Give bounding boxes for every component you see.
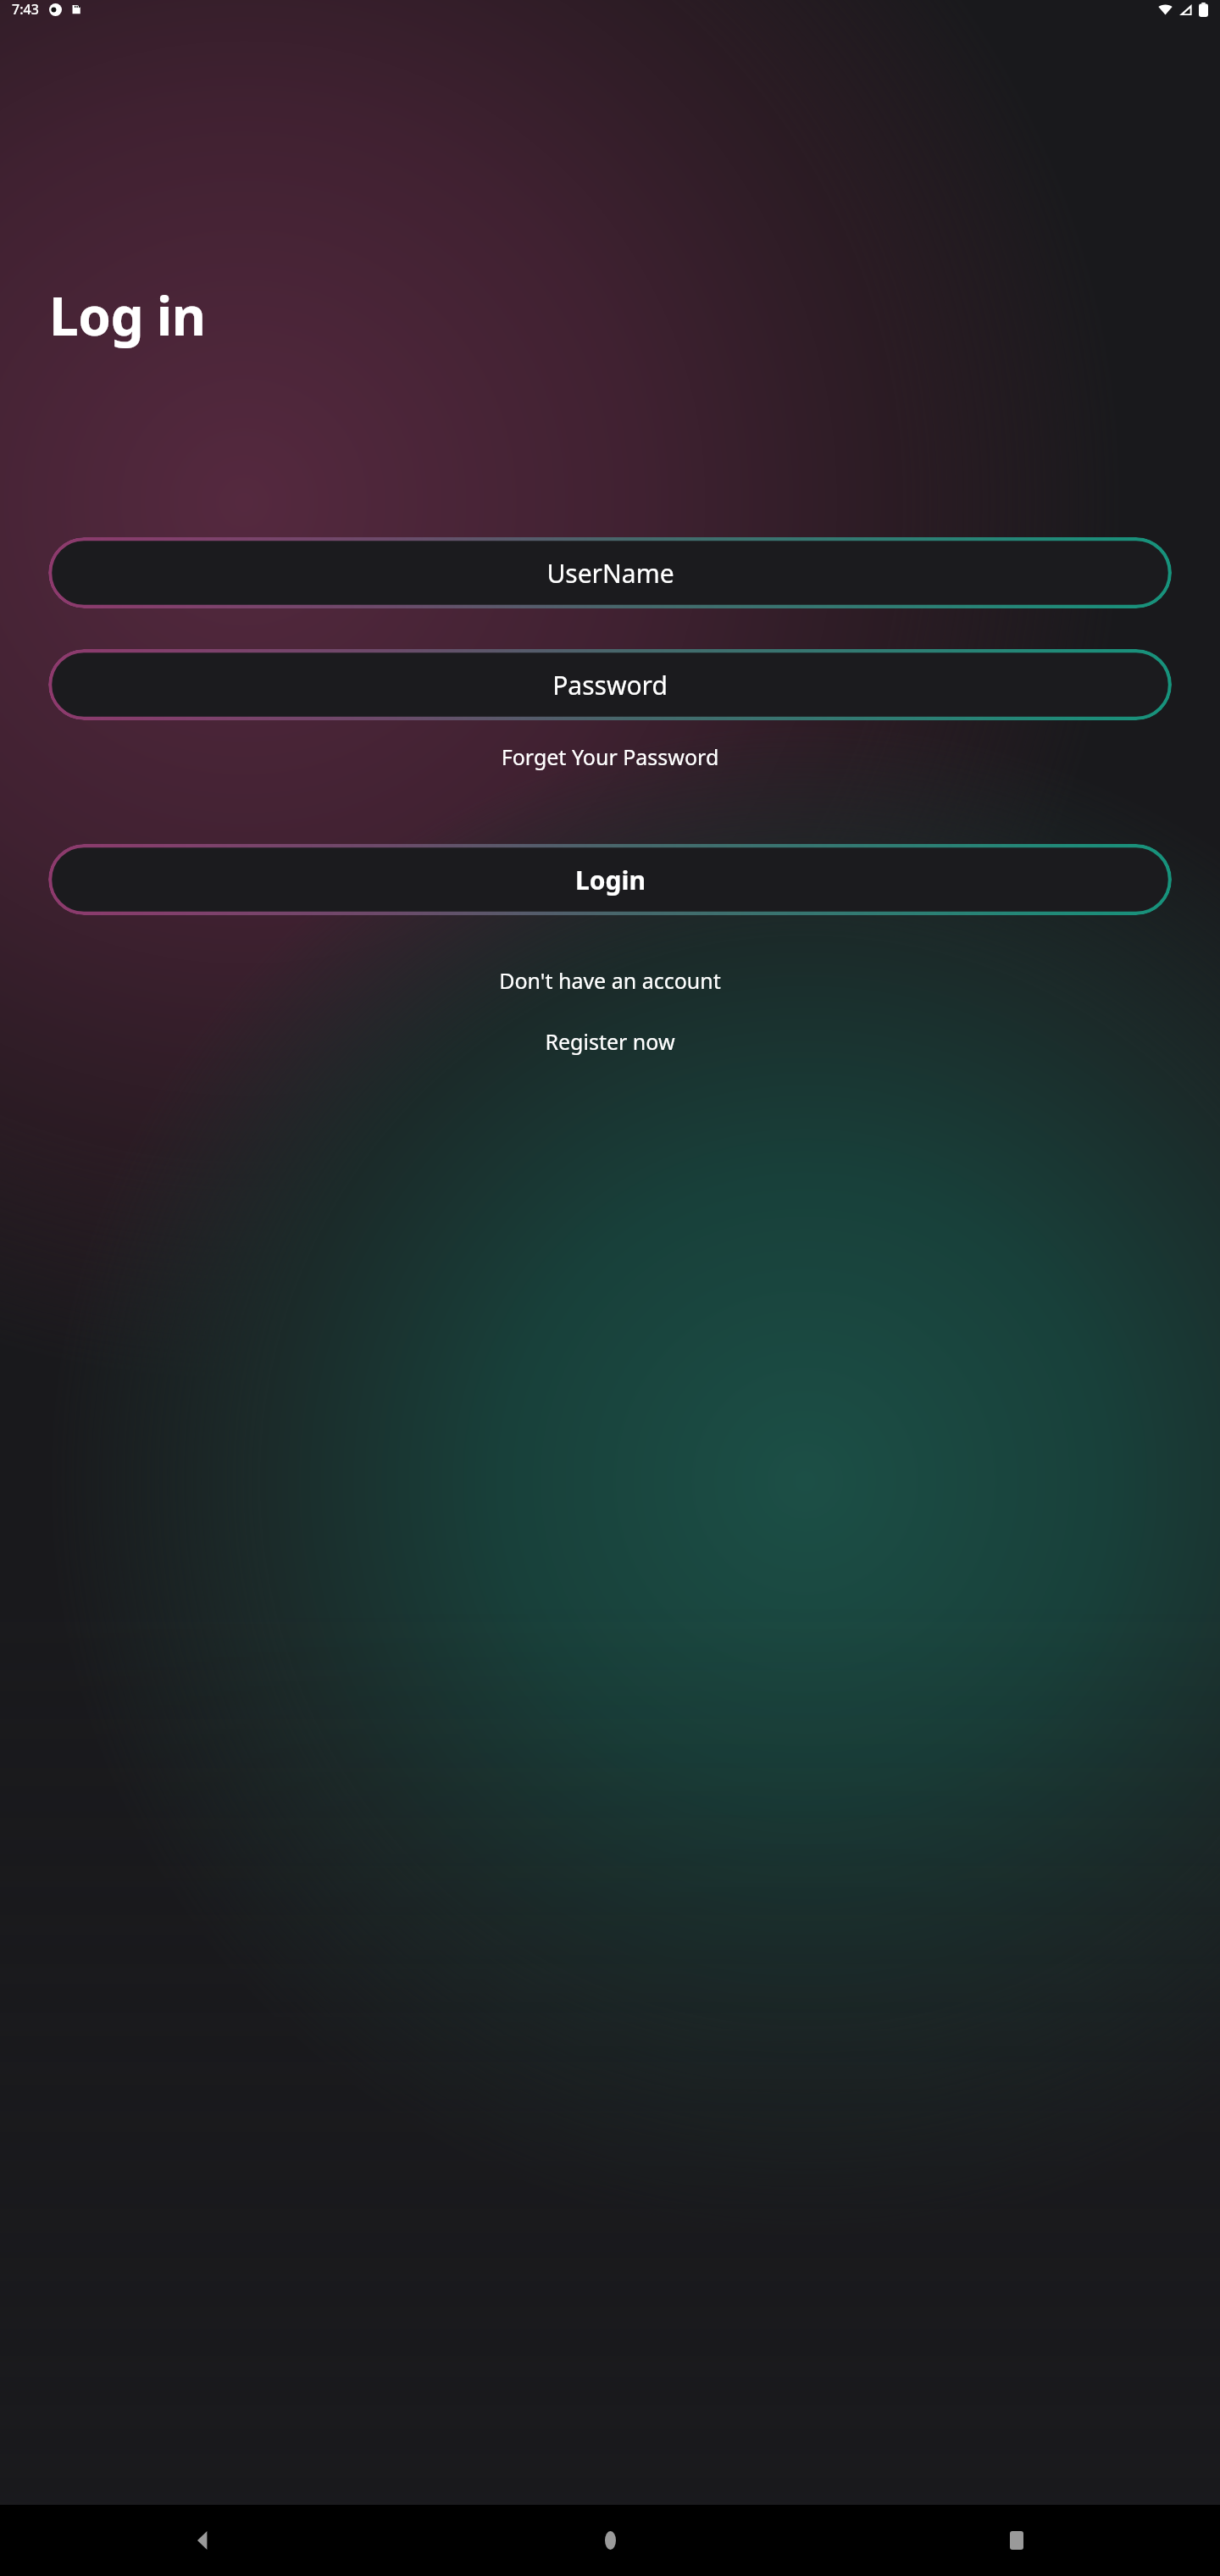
button[interactable]: Password — [48, 649, 1172, 720]
staticText: UserName — [546, 556, 674, 591]
staticText: Login — [575, 863, 646, 897]
button[interactable]: Forget Your Password — [0, 736, 1220, 778]
staticText: Don't have an account — [0, 966, 1220, 995]
staticText: Password — [552, 668, 668, 702]
staticText: 7:43 — [12, 0, 39, 19]
button[interactable]: UserName — [48, 537, 1172, 608]
button[interactable]: Home — [407, 2505, 813, 2576]
staticText: Log in — [49, 280, 206, 351]
button[interactable]: Login — [48, 844, 1172, 915]
button[interactable]: Register now — [0, 1020, 1220, 1063]
button[interactable]: Recent apps — [813, 2505, 1220, 2576]
button[interactable]: Back — [0, 2505, 407, 2576]
